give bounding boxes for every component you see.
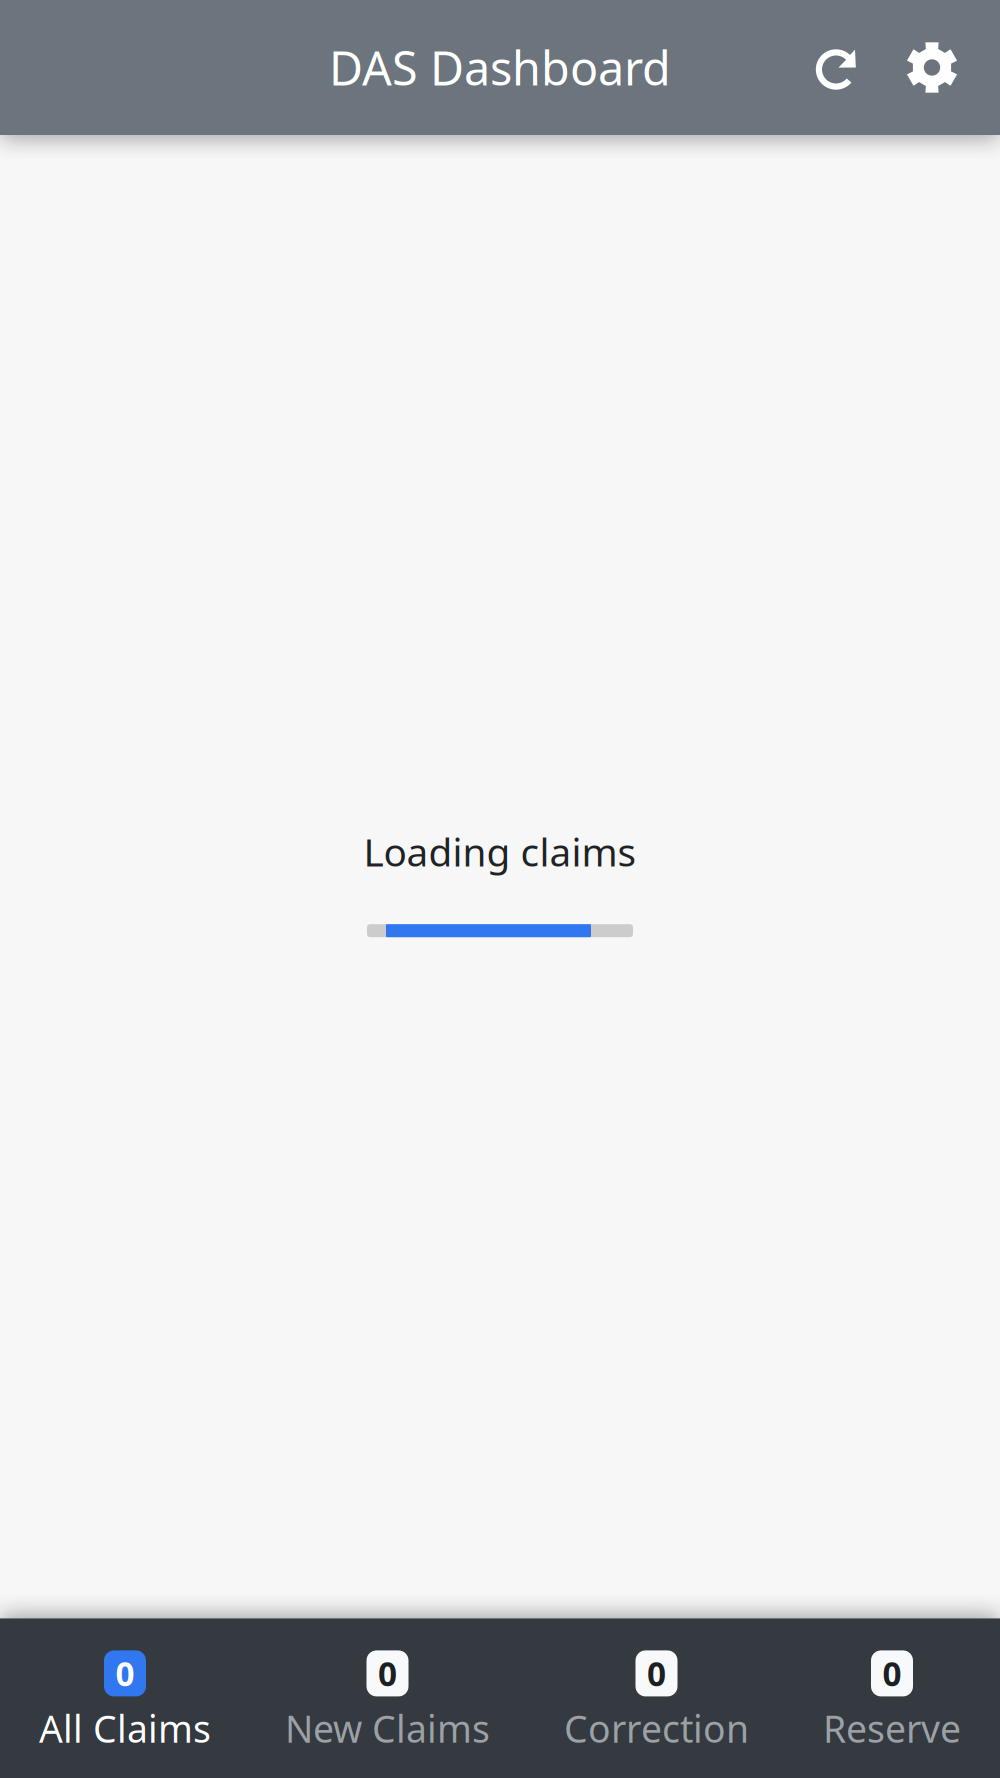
staticText: New Claims bbox=[285, 1703, 490, 1753]
staticText: Correction bbox=[564, 1703, 749, 1753]
staticText: Reserve bbox=[823, 1703, 961, 1753]
staticText: 0 bbox=[647, 1651, 666, 1696]
staticText: Loading claims bbox=[363, 826, 636, 877]
staticText: DAS Dashboard bbox=[329, 36, 671, 98]
button[interactable]: 0 bbox=[786, 1618, 998, 1778]
button[interactable]: Settings bbox=[884, 12, 980, 122]
button[interactable]: 0 bbox=[248, 1618, 527, 1778]
button[interactable]: 0 bbox=[527, 1618, 786, 1778]
button[interactable]: 0 bbox=[2, 1618, 248, 1778]
staticText: 0 bbox=[882, 1651, 901, 1696]
staticText: All Claims bbox=[39, 1703, 211, 1753]
button[interactable]: Refresh bbox=[788, 12, 884, 122]
staticText: 0 bbox=[115, 1651, 134, 1696]
staticText: 0 bbox=[378, 1651, 397, 1696]
